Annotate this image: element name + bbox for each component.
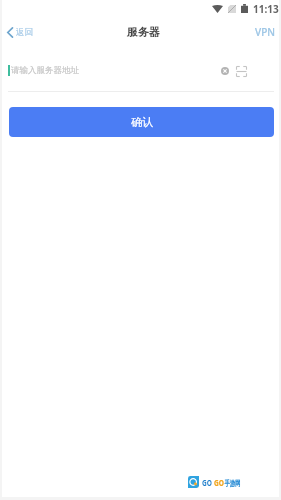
- button[interactable]: Clear text: [218, 64, 232, 78]
- staticText: GO: [214, 475, 224, 488]
- staticText: 确认: [131, 115, 153, 129]
- button[interactable]: VPN: [246, 18, 279, 46]
- staticText: VPN: [255, 25, 276, 39]
- staticText: 请输入服务器地址: [11, 65, 79, 76]
- staticText: 11:13: [253, 2, 279, 16]
- staticText: 服务器: [127, 25, 160, 39]
- staticText: 返回: [16, 27, 33, 38]
- button[interactable]: 确认: [9, 107, 274, 137]
- staticText: GO: [202, 475, 213, 488]
- button[interactable]: 返回: [2, 18, 41, 46]
- button[interactable]: Scan QR code: [234, 64, 248, 78]
- staticText: 手游网: [224, 478, 240, 488]
